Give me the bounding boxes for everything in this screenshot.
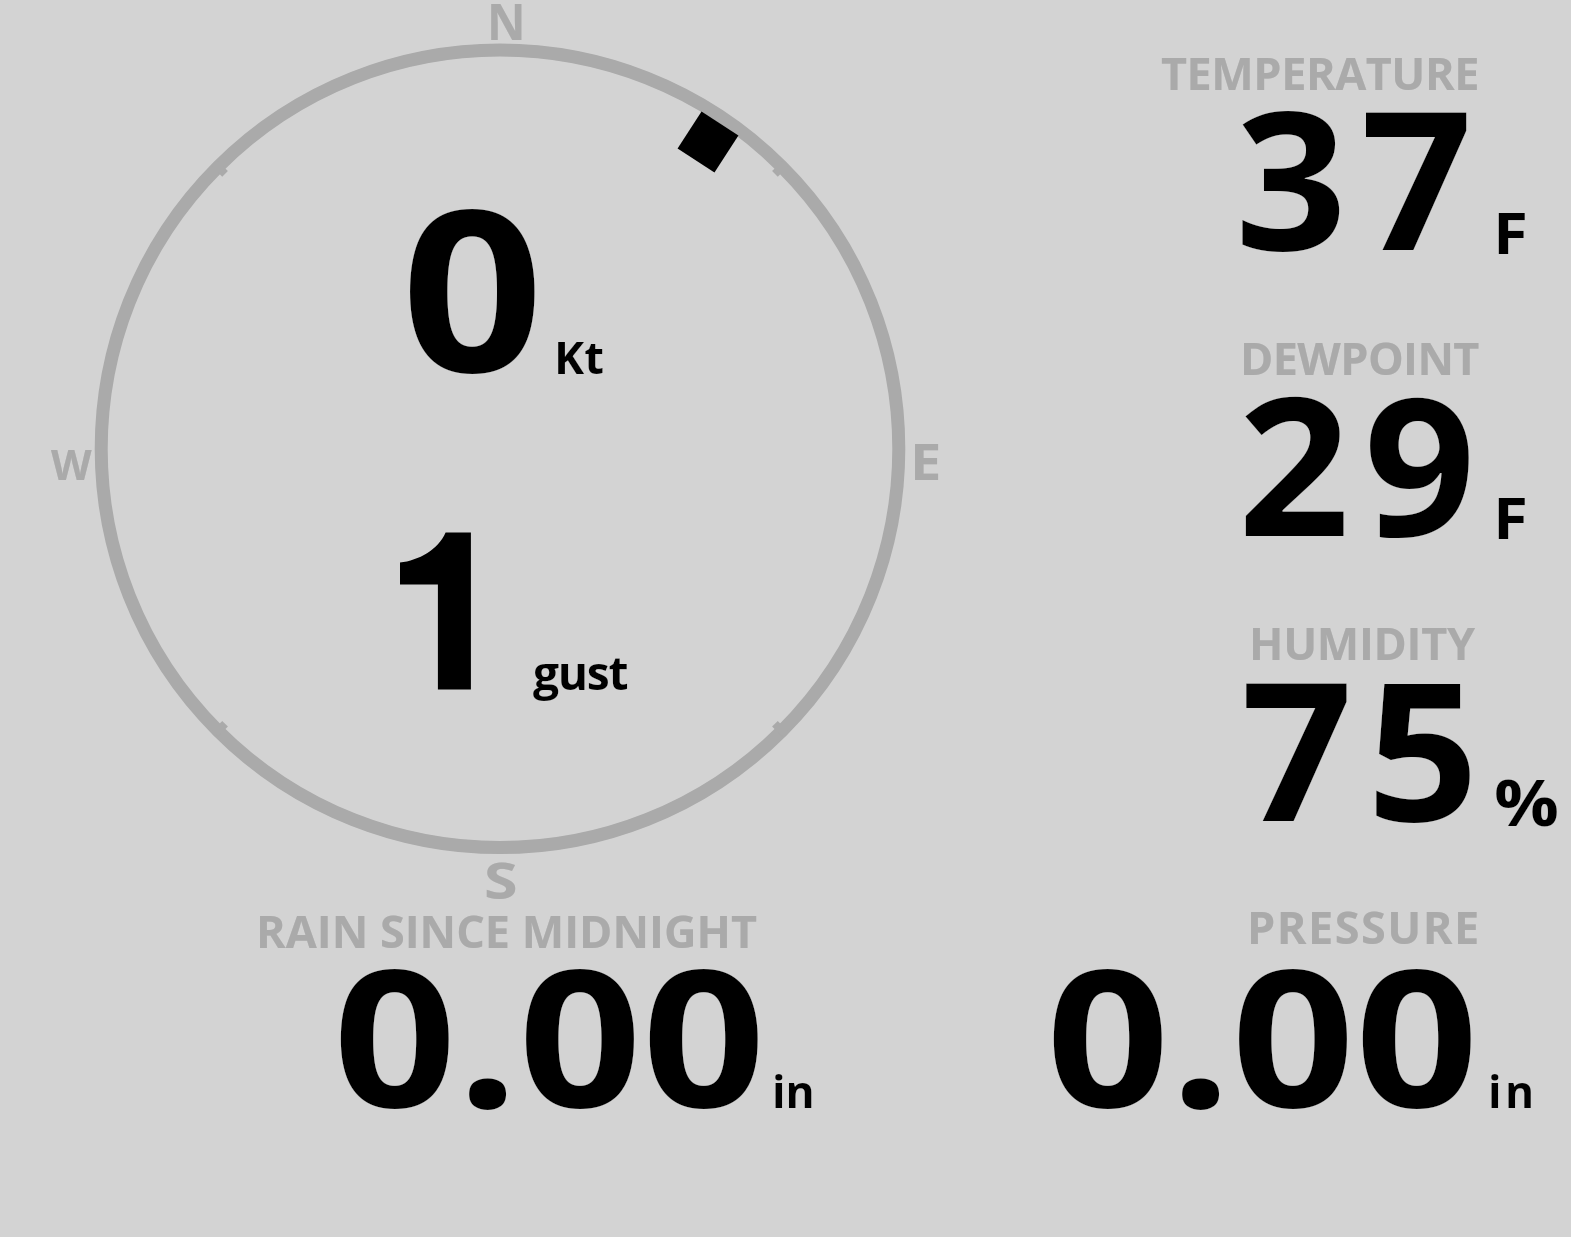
other: Wind direction 34 degrees bbox=[678, 112, 738, 172]
staticText: gust bbox=[533, 641, 628, 704]
button[interactable]: Temperature 37 F bbox=[1000, 20, 1560, 270]
button[interactable]: Wind 0 knots, gust 1, direction 34 degre… bbox=[60, 10, 960, 890]
button[interactable]: Dewpoint 29 F bbox=[1000, 305, 1560, 555]
staticText: HUMIDITY bbox=[1249, 612, 1475, 673]
staticText: 29 bbox=[1238, 331, 1490, 592]
staticText: 75 bbox=[1241, 616, 1493, 877]
staticText: 0.00 bbox=[1046, 903, 1480, 1162]
button[interactable]: Rain since midnight 0.00 in bbox=[180, 880, 820, 1130]
staticText: 37 bbox=[1235, 45, 1487, 306]
button[interactable]: Humidity 75 percent bbox=[1000, 590, 1560, 840]
staticText: W bbox=[51, 435, 92, 492]
staticText: RAIN SINCE MIDNIGHT bbox=[256, 900, 757, 961]
staticText: F bbox=[1493, 477, 1528, 556]
button[interactable]: Pressure 0.00 in bbox=[960, 880, 1560, 1130]
staticText: 0 bbox=[401, 133, 544, 438]
staticText: PRESSURE bbox=[1247, 896, 1481, 957]
staticText: E bbox=[910, 427, 942, 495]
staticText: S bbox=[484, 846, 518, 914]
staticText: in bbox=[1488, 1061, 1538, 1121]
staticText: F bbox=[1493, 192, 1528, 271]
staticText: % bbox=[1494, 757, 1559, 846]
staticText: Kt bbox=[554, 325, 604, 387]
staticText: TEMPERATURE bbox=[1161, 42, 1479, 103]
staticText: 0.00 bbox=[333, 903, 767, 1162]
staticText: DEWPOINT bbox=[1240, 327, 1479, 388]
staticText: in bbox=[772, 1061, 815, 1121]
staticText: N bbox=[487, 0, 526, 55]
